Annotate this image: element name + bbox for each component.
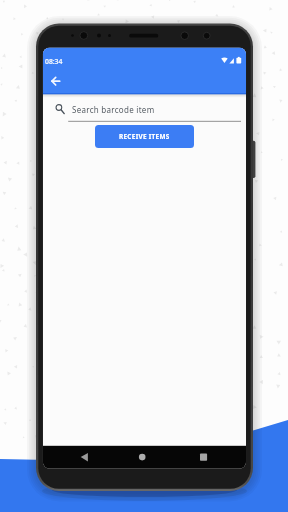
staticText: 08:34 [45, 57, 63, 66]
staticText: RECEIVE ITEMS [119, 132, 170, 141]
button[interactable] [129, 446, 156, 469]
button[interactable] [44, 96, 245, 124]
button[interactable] [46, 70, 65, 91]
button[interactable] [190, 446, 217, 469]
button[interactable]: RECEIVE ITEMS [95, 125, 194, 148]
staticText: Search barcode item [72, 104, 155, 115]
button[interactable] [71, 446, 98, 469]
